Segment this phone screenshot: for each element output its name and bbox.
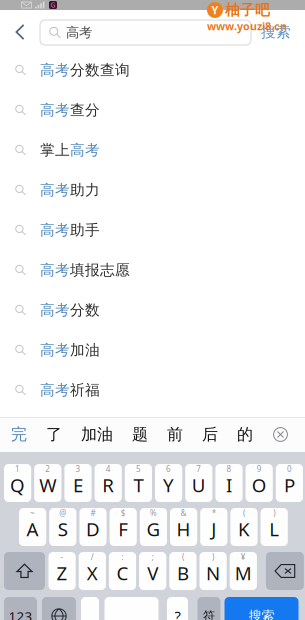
button[interactable]: 7: [185, 464, 212, 502]
staticText: 123: [8, 607, 32, 620]
button[interactable]: 3: [64, 464, 92, 502]
button[interactable]: #: [79, 508, 107, 546]
button[interactable]: 高考: [0, 370, 305, 410]
button[interactable]: ?: [167, 597, 188, 620]
button[interactable]: 0: [276, 464, 303, 502]
button[interactable]: (: [230, 508, 258, 546]
staticText: 5: [136, 464, 141, 474]
button[interactable]: %: [140, 508, 167, 546]
staticText: *: [212, 508, 216, 518]
button[interactable]: 6: [155, 464, 182, 502]
staticText: I: [226, 473, 232, 497]
button[interactable]: Delete: [266, 552, 304, 590]
staticText: G: [146, 517, 160, 541]
staticText: :: [121, 552, 123, 562]
button[interactable]: Clear input: [272, 417, 289, 452]
staticText: L: [269, 517, 279, 541]
button[interactable]: 加油: [81, 417, 113, 452]
button[interactable]: @: [49, 508, 76, 546]
staticText: 3: [75, 464, 80, 474]
button[interactable]: 高考: [0, 330, 305, 370]
button[interactable]: 掌上: [0, 130, 305, 170]
button[interactable]: 的: [237, 417, 253, 452]
button[interactable]: 题: [132, 417, 148, 452]
staticText: ~: [30, 508, 35, 518]
staticText: 柚子吧: [225, 1, 270, 19]
staticText: 分数查询: [70, 61, 130, 79]
staticText: /: [91, 552, 94, 562]
button[interactable]: ¥: [230, 552, 257, 590]
staticText: 搜索: [248, 608, 274, 620]
staticText: F: [118, 517, 128, 541]
button[interactable]: /: [79, 552, 106, 590]
staticText: 加油: [81, 425, 113, 444]
staticText: &: [181, 508, 187, 518]
button[interactable]: 高考: [0, 290, 305, 330]
staticText: E: [73, 473, 83, 497]
button[interactable]: 了: [46, 417, 62, 452]
button[interactable]: ;: [139, 552, 166, 590]
staticText: 高考: [40, 381, 70, 399]
button[interactable]: 高考: [0, 210, 305, 250]
staticText: 分数: [70, 301, 100, 319]
staticText: 高考: [40, 341, 70, 359]
button[interactable]: 5: [125, 464, 152, 502]
button[interactable]: 前: [167, 417, 183, 452]
button[interactable]: 搜索: [224, 597, 298, 620]
staticText: (: [182, 552, 184, 562]
staticText: J: [211, 517, 216, 541]
button[interactable]: 高考: [0, 50, 305, 90]
button[interactable]: 符: [197, 597, 220, 620]
staticText: 8: [226, 464, 231, 474]
staticText: (: [243, 508, 245, 518]
staticText: 1: [15, 464, 20, 474]
button[interactable]: -: [48, 552, 76, 590]
button[interactable]: 9: [246, 464, 273, 502]
button[interactable]: 搜索: [251, 15, 301, 49]
staticText: H: [177, 517, 191, 541]
staticText: 0: [287, 464, 292, 474]
button[interactable]: ~: [19, 508, 46, 546]
staticText: D: [86, 517, 100, 541]
button[interactable]: $: [110, 508, 137, 546]
button[interactable]: Space: [104, 597, 158, 620]
staticText: 搜索: [261, 23, 291, 41]
staticText: 4: [106, 464, 111, 474]
staticText: 祈福: [70, 381, 100, 399]
button[interactable]: &: [170, 508, 197, 546]
staticText: 6: [166, 464, 171, 474]
button[interactable]: 8: [215, 464, 243, 502]
staticText: 高考: [70, 141, 100, 159]
staticText: 高考: [40, 301, 70, 319]
button[interactable]: *: [200, 508, 227, 546]
staticText: Q: [10, 473, 25, 497]
button[interactable]: ): [261, 508, 288, 546]
button[interactable]: :: [109, 552, 136, 590]
button[interactable]: Switch keyboard: [42, 597, 76, 620]
button[interactable]: 完: [11, 417, 27, 452]
staticText: #: [90, 508, 95, 518]
button[interactable]: Shift: [4, 552, 45, 590]
button[interactable]: 高考: [0, 90, 305, 130]
staticText: 高考: [40, 261, 70, 279]
button[interactable]: 2: [34, 464, 61, 502]
button[interactable]: 高考: [0, 170, 305, 210]
staticText: 完: [11, 425, 27, 444]
staticText: V: [147, 561, 158, 585]
staticText: U: [192, 473, 206, 497]
button[interactable]: Back: [1, 15, 39, 49]
button[interactable]: 1: [4, 464, 31, 502]
button[interactable]: 123: [4, 597, 37, 620]
button[interactable]: 4: [95, 464, 122, 502]
staticText: 了: [46, 425, 62, 444]
button[interactable]: 高考: [0, 250, 305, 290]
staticText: ?: [174, 606, 180, 620]
staticText: M: [235, 561, 252, 585]
staticText: A: [27, 517, 39, 541]
staticText: ;: [152, 552, 154, 562]
staticText: 高考: [40, 61, 70, 79]
button[interactable]: (: [169, 552, 196, 590]
button[interactable]: ): [199, 552, 227, 590]
button[interactable]: ,: [81, 597, 99, 620]
button[interactable]: 后: [202, 417, 218, 452]
